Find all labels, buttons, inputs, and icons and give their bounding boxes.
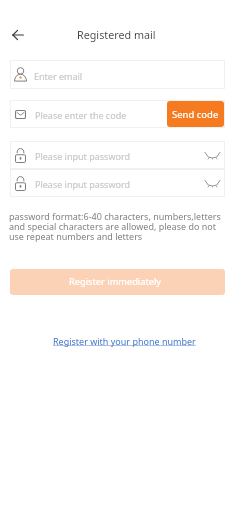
button[interactable]: Register with your phone number [52,334,197,348]
staticText: Please enter the code [35,109,127,121]
staticText: Enter email [34,70,83,82]
button[interactable]: Show password [203,146,221,164]
button[interactable]: Please input password [10,169,225,197]
button[interactable]: Enter email [10,60,225,89]
button[interactable]: Please enter the code [10,100,225,128]
button[interactable]: Show password [203,174,221,192]
button[interactable]: Back [7,24,29,46]
staticText: Register immediately [69,275,162,288]
button[interactable]: Please input password [10,141,225,169]
staticText: Please input password [35,178,130,190]
staticText: Send code [172,108,219,121]
staticText: password format:6-40 characters, numbers… [9,210,223,243]
staticText: Register with your phone number [53,335,196,347]
button[interactable]: Send code [167,101,224,127]
button[interactable]: Register immediately [10,269,225,295]
staticText: Please input password [35,150,130,162]
staticText: Registered mail [77,28,156,43]
